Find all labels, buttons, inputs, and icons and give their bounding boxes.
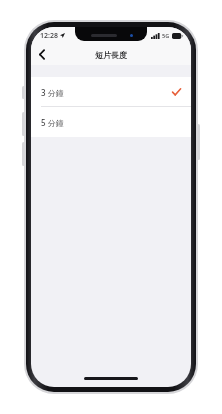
- staticText: 5G: [162, 32, 170, 39]
- button[interactable]: 5 分鐘: [31, 107, 191, 137]
- staticText: 3 分鐘: [41, 87, 64, 98]
- button[interactable]: 3 分鐘: [31, 77, 191, 107]
- staticText: 12:28: [40, 31, 58, 41]
- button[interactable]: Back: [31, 44, 53, 65]
- staticText: 5 分鐘: [41, 117, 64, 128]
- staticText: 短片長度: [95, 50, 127, 60]
